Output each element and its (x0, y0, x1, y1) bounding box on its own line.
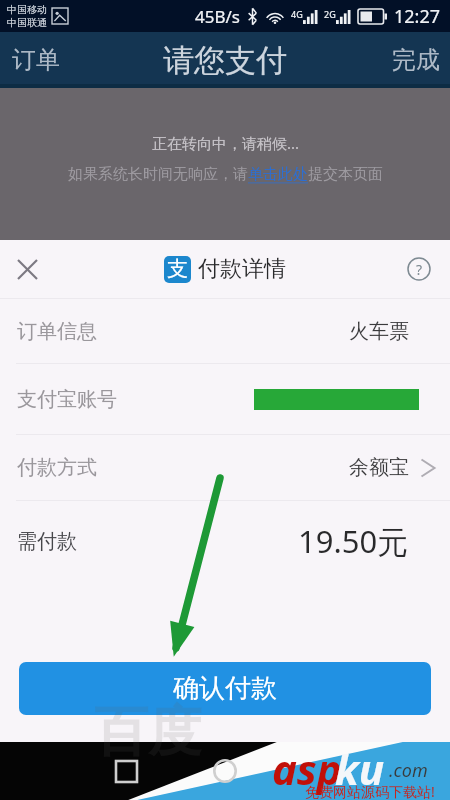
staticText: 支 (167, 256, 188, 282)
staticText: 免费网站源码下载站! (305, 782, 435, 800)
staticText: 百度 (94, 698, 202, 766)
button[interactable]: 需付款 (0, 501, 450, 581)
staticText: 19.50元 (298, 520, 409, 562)
staticText: 45B/s (195, 5, 240, 28)
staticText: 2G (324, 8, 336, 20)
staticText: .com (389, 758, 428, 783)
button[interactable]: 订单 (0, 45, 60, 75)
button[interactable]: 单击此处 (248, 165, 308, 184)
staticText: ku (335, 740, 385, 797)
staticText: 付款方式 (17, 455, 97, 480)
staticText: 请您支付 (163, 41, 287, 80)
staticText: 确认付款 (173, 672, 277, 705)
button[interactable]: 订单信息 (0, 299, 450, 363)
button[interactable]: 完成 (392, 45, 450, 75)
button[interactable]: 确认付款 (19, 662, 431, 715)
staticText: asp (272, 740, 342, 797)
button[interactable]: Help (406, 256, 432, 282)
staticText: ? (416, 260, 423, 279)
button[interactable]: Recents (105, 751, 147, 791)
staticText: 如果系统长时间无响应，请 (68, 165, 248, 184)
staticText: 中国移动 (7, 3, 47, 16)
staticText: 正在转向中，请稍候... (152, 133, 300, 153)
button[interactable]: 付款方式 (0, 435, 450, 500)
staticText: 需付款 (17, 529, 77, 554)
button[interactable]: Home (204, 751, 246, 791)
staticText: 付款详情 (198, 255, 286, 283)
staticText: 提交本页面 (308, 165, 383, 184)
staticText: 余额宝 (349, 455, 409, 480)
staticText: 12:27 (394, 4, 441, 29)
staticText: 4G (291, 8, 303, 20)
staticText: 订单信息 (17, 319, 97, 344)
button[interactable]: Close (9, 251, 45, 287)
staticText: 火车票 (349, 319, 409, 344)
button[interactable]: 支付宝账号 (0, 364, 450, 434)
staticText: 中国联通 (7, 16, 47, 29)
staticText: 支付宝账号 (17, 387, 117, 412)
